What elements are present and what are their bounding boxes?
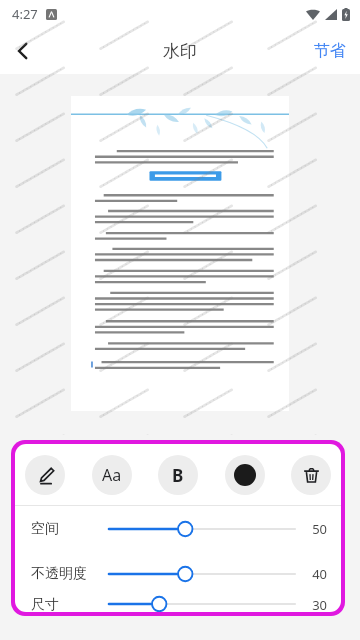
staticText: 4:27	[12, 5, 38, 23]
staticText: 40	[305, 565, 327, 583]
staticText: 不透明度	[31, 565, 109, 583]
staticText: 50	[305, 520, 327, 538]
staticText: Aa	[102, 464, 122, 486]
button[interactable]: Pen	[25, 455, 65, 495]
button[interactable]: 节省	[300, 28, 360, 74]
button[interactable]: 不透明度	[15, 551, 341, 596]
staticText: 尺寸	[31, 596, 109, 612]
button[interactable]: 空间	[15, 506, 341, 551]
staticText: 节省	[314, 41, 346, 61]
button[interactable]: Text style	[92, 455, 132, 495]
staticText: 空间	[31, 520, 109, 538]
button[interactable]: Bold	[158, 455, 198, 495]
button[interactable]: Delete	[291, 455, 331, 495]
button[interactable]: 尺寸	[15, 596, 341, 612]
staticText: B	[172, 464, 184, 487]
staticText: 水印	[163, 41, 197, 62]
staticText: 30	[305, 596, 327, 612]
button[interactable]: Back	[0, 28, 46, 74]
button[interactable]: Color	[225, 455, 265, 495]
